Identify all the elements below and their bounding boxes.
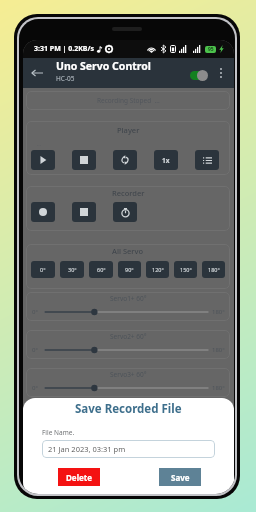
button[interactable]: 1x [154, 150, 178, 170]
staticText: Recorder [112, 188, 145, 198]
staticText: 180° [212, 346, 225, 354]
button[interactable]: 180° [202, 261, 225, 278]
button[interactable]: 90° [118, 261, 141, 278]
button[interactable]: timer [113, 202, 137, 222]
staticText: 0° [32, 308, 39, 316]
staticText: Recording Stoped ... [97, 96, 160, 105]
button[interactable]: loop [113, 150, 137, 170]
button[interactable]: stop [72, 202, 96, 222]
button[interactable]: 30° [60, 261, 84, 278]
staticText: 0° [40, 266, 46, 273]
staticText: Save [171, 472, 190, 483]
staticText: File Name. [42, 428, 75, 437]
staticText: 0° [32, 346, 39, 354]
staticText: 180° [212, 384, 225, 392]
staticText: Uno Servo Control [56, 59, 151, 73]
staticText: All Servo [112, 246, 144, 256]
button[interactable]: 120° [146, 261, 169, 278]
button[interactable]: More options [215, 67, 227, 79]
staticText: 30° [68, 266, 77, 273]
staticText: 180° [212, 308, 225, 316]
staticText: Delete [66, 472, 93, 483]
button[interactable]: Delete [58, 468, 100, 486]
button[interactable]: stop [72, 150, 96, 170]
button[interactable]: 60° [89, 261, 113, 278]
staticText: 95 [208, 46, 214, 53]
button[interactable]: 150° [174, 261, 197, 278]
button[interactable]: list [195, 150, 219, 170]
staticText: 3:31 PM | 0.2KB/s [34, 44, 94, 54]
button[interactable]: rec [31, 202, 55, 222]
staticText: Servo1+ 60° [110, 294, 147, 303]
staticText: HC-05 [56, 74, 75, 83]
staticText: 180° [208, 266, 220, 273]
staticText: Servo2+ 60° [110, 332, 147, 341]
staticText: Save Recorded File [75, 401, 182, 417]
staticText: 21 Jan 2023, 03:31 pm [48, 444, 126, 454]
staticText: 60° [97, 266, 106, 273]
button[interactable]: Back [28, 64, 46, 82]
button[interactable]: Save [159, 468, 201, 486]
button[interactable]: 0° [31, 261, 55, 278]
staticText: 1x [162, 156, 170, 165]
staticText: 0° [32, 384, 39, 392]
staticText: 120° [152, 266, 164, 273]
staticText: 90° [125, 266, 134, 273]
staticText: Player [117, 125, 140, 135]
button[interactable]: play [31, 150, 55, 170]
staticText: 150° [180, 266, 192, 273]
button[interactable]: Bluetooth connection toggle [190, 69, 208, 82]
staticText: Servo3+ 60° [110, 370, 147, 379]
